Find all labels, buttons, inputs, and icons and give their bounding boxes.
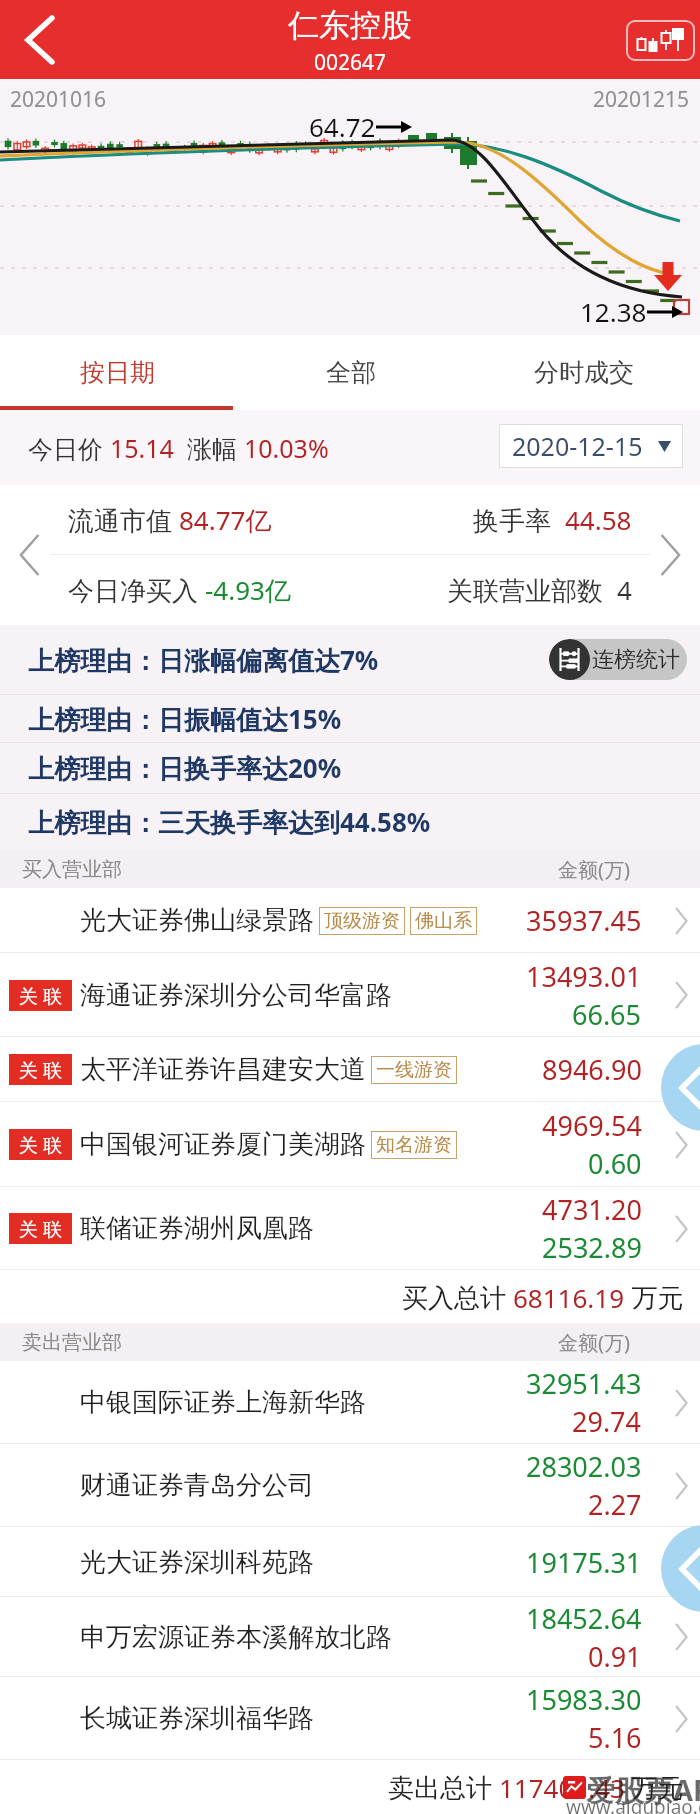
staticText: 分时成交 — [534, 357, 634, 388]
staticText: 18452.64 — [526, 1600, 642, 1637]
staticText: 002647 — [314, 48, 387, 77]
button[interactable]: 光大证券深圳科苑路 — [0, 1527, 700, 1597]
staticText: 中国银河证券厦门美湖路 — [80, 1128, 366, 1161]
staticText: 15983.30 — [526, 1681, 642, 1718]
staticText: 2020-12-15 — [512, 429, 643, 463]
staticText: 关 联 — [19, 1216, 62, 1242]
button[interactable]: 全部 — [234, 335, 467, 410]
staticText: 66.65 — [572, 996, 642, 1033]
staticText: 万元 — [625, 1769, 684, 1805]
staticText: 13493.01 — [526, 958, 642, 995]
staticText: 2532.89 — [542, 1229, 642, 1266]
staticText: 顶级游资 — [324, 909, 400, 933]
staticText: 64.72 — [309, 109, 376, 144]
staticText: 上榜理由：三天换手率达到44.58% — [28, 804, 431, 840]
staticText: 流通市值 — [68, 502, 179, 538]
staticText: 8946.90 — [542, 1051, 642, 1088]
staticText: 光大证券佛山绿景路 — [80, 904, 314, 937]
button[interactable]: K line chart — [626, 20, 695, 61]
staticText: 20201016 — [10, 85, 107, 114]
button[interactable]: 财通证券青岛分公司 — [0, 1444, 700, 1527]
button[interactable]: 关 联 — [0, 1187, 700, 1270]
staticText: 5.16 — [588, 1719, 642, 1756]
staticText: 10.03% — [244, 431, 329, 465]
staticText: 全部 — [326, 357, 376, 388]
staticText: 0.60 — [588, 1145, 642, 1182]
staticText: 关 联 — [19, 1132, 62, 1158]
button[interactable]: 按日期 — [0, 335, 234, 410]
button[interactable]: 关 联 — [0, 1102, 700, 1187]
staticText: 20201215 — [593, 85, 690, 114]
staticText: 29.74 — [572, 1403, 642, 1440]
button[interactable]: 光大证券佛山绿景路 — [0, 888, 700, 953]
staticText: 关联营业部数 — [447, 572, 617, 608]
staticText: 金额(万) — [558, 856, 630, 883]
staticText: 太平洋证券许昌建安大道 — [80, 1053, 366, 1086]
button[interactable]: Previous — [18, 535, 42, 575]
staticText: 关 联 — [19, 1057, 62, 1083]
staticText: 长城证券深圳福华路 — [80, 1702, 314, 1735]
staticText: 按日期 — [80, 357, 155, 388]
button[interactable]: 分时成交 — [467, 335, 700, 410]
staticText: 上榜理由：日涨幅偏离值达7% — [28, 642, 379, 678]
staticText: 卖出总计 — [388, 1769, 499, 1805]
staticText: 财通证券青岛分公司 — [80, 1469, 314, 1502]
button[interactable]: 连榜统计 — [549, 639, 687, 680]
staticText: 中银国际证券上海新华路 — [80, 1386, 366, 1419]
staticText: 光大证券深圳科苑路 — [80, 1546, 314, 1579]
staticText: -4.93亿 — [205, 572, 291, 608]
staticText: 12.38 — [580, 294, 647, 329]
button[interactable]: Previous page — [661, 1044, 700, 1131]
staticText: 卖出营业部 — [22, 1330, 122, 1355]
staticText: 仁东控股 — [288, 6, 412, 45]
staticText: 68116.19 — [513, 1280, 625, 1315]
staticText: 一线游资 — [376, 1058, 452, 1082]
button[interactable]: 2020-12-15 — [499, 424, 683, 468]
staticText: 申万宏源证券本溪解放北路 — [80, 1621, 392, 1654]
staticText: 上榜理由：日换手率达20% — [28, 750, 342, 786]
staticText: 买入总计 — [402, 1279, 513, 1315]
staticText: www.aigupiao.com — [566, 1794, 700, 1814]
staticText: 84.77亿 — [179, 502, 272, 538]
staticText: 4 — [617, 572, 632, 607]
staticText: 佛山系 — [415, 909, 472, 933]
button[interactable]: 申万宏源证券本溪解放北路 — [0, 1597, 700, 1677]
staticText: 海通证券深圳分公司华富路 — [80, 979, 392, 1012]
button[interactable]: 上榜理由：日振幅值达15% — [0, 695, 700, 742]
staticText: 今日价 — [28, 431, 110, 465]
button[interactable]: 长城证券深圳福华路 — [0, 1677, 700, 1760]
staticText: 爱股票APP — [586, 1770, 700, 1810]
staticText: 4969.54 — [542, 1107, 642, 1144]
staticText: 万元 — [625, 1279, 684, 1315]
staticText: 今日净买入 — [68, 572, 205, 608]
button[interactable]: 上榜理由：三天换手率达到44.58% — [0, 794, 700, 850]
staticText: 买入营业部 — [22, 857, 122, 882]
button[interactable]: 关 联 — [0, 953, 700, 1037]
staticText: 涨幅 — [174, 431, 244, 465]
staticText: 连榜统计 — [592, 646, 680, 674]
staticText: 117401.43 — [499, 1770, 625, 1805]
staticText: 4731.20 — [542, 1191, 642, 1228]
button[interactable]: Back — [0, 0, 90, 79]
staticText: 2.27 — [588, 1486, 642, 1523]
button[interactable]: 中银国际证券上海新华路 — [0, 1361, 700, 1444]
staticText: 28302.03 — [526, 1448, 642, 1485]
staticText: 知名游资 — [376, 1133, 452, 1157]
staticText: 关 联 — [19, 983, 62, 1009]
button[interactable]: 关 联 — [0, 1037, 700, 1102]
staticText: 上榜理由：日振幅值达15% — [28, 701, 342, 737]
staticText: 15.14 — [110, 431, 174, 465]
button[interactable]: Next — [658, 535, 682, 575]
staticText: 44.58 — [565, 502, 632, 537]
staticText: 0.91 — [588, 1638, 642, 1675]
button[interactable]: Previous page — [661, 1525, 700, 1612]
staticText: 联储证券湖州凤凰路 — [80, 1212, 314, 1245]
staticText: 金额(万) — [558, 1329, 630, 1356]
staticText: 35937.45 — [526, 902, 642, 939]
button[interactable]: 上榜理由：日换手率达20% — [0, 743, 700, 793]
staticText: 19175.31 — [526, 1544, 642, 1581]
staticText: 32951.43 — [526, 1365, 642, 1402]
staticText: 换手率 — [473, 502, 565, 538]
